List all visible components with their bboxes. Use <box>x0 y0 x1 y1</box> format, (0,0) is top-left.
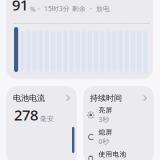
staticText: 91 <box>12 0 28 14</box>
staticText: 3秒 <box>98 115 109 124</box>
button[interactable]: 电池电流 <box>13 93 70 103</box>
staticText: 0秒 <box>98 137 109 146</box>
staticText: 电池电流 <box>13 93 45 103</box>
button[interactable]: 持续时间 <box>90 93 147 103</box>
staticText: 持续时间 <box>90 93 122 103</box>
staticText: 熄屏 <box>98 128 112 136</box>
staticText: 毫安 <box>40 115 54 123</box>
staticText: 278 <box>14 105 38 124</box>
staticText: 亮屏 <box>98 106 112 114</box>
staticText: 使用电池 <box>98 150 126 158</box>
button[interactable]: 亮屏 <box>87 104 147 126</box>
staticText: · 15时3分 剩余 · 放电 <box>38 4 110 13</box>
button[interactable]: 熄屏 <box>87 126 147 148</box>
staticText: % <box>30 5 36 13</box>
button[interactable]: 使用电池 <box>87 148 147 160</box>
